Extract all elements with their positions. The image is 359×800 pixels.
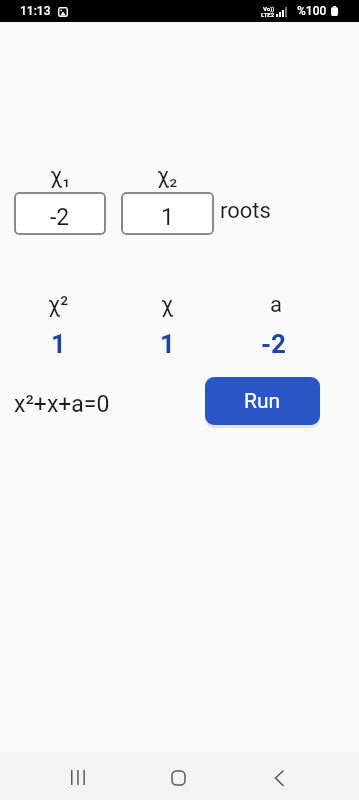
staticText: Run	[244, 389, 281, 414]
button[interactable]	[258, 760, 298, 794]
staticText: χ	[161, 292, 174, 318]
staticText: 11:13	[20, 4, 51, 18]
staticText: χ₂	[157, 163, 178, 189]
staticText: -2	[261, 329, 287, 359]
staticText: Vo))	[263, 5, 275, 12]
staticText: 1	[160, 329, 175, 359]
staticText: χ²	[48, 292, 69, 318]
staticText: 1	[51, 329, 66, 359]
button[interactable]: 1	[121, 192, 214, 235]
button[interactable]	[58, 760, 98, 794]
staticText: LTE2	[261, 11, 275, 18]
button[interactable]: -2	[14, 192, 106, 235]
staticText: 1	[161, 204, 174, 231]
staticText: a	[270, 292, 282, 318]
staticText: -2	[50, 204, 70, 231]
staticText: χ₁	[50, 163, 71, 189]
staticText: roots	[220, 198, 271, 224]
staticText: x²+x+a=0	[14, 391, 110, 418]
button[interactable]	[158, 760, 198, 794]
staticText: %100	[297, 4, 327, 18]
button[interactable]: Run	[205, 377, 320, 425]
